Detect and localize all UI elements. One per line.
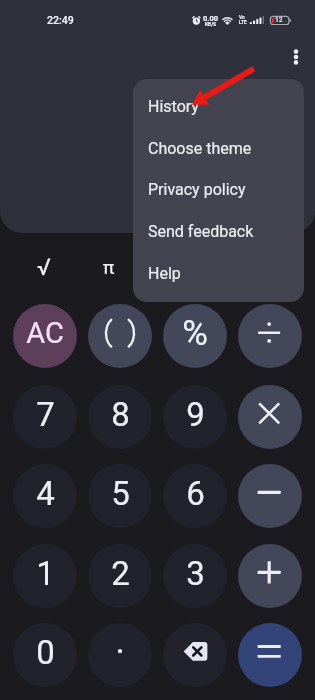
button[interactable]: 7 (13, 385, 77, 449)
staticText: Help (148, 264, 181, 283)
staticText: LTE (239, 20, 247, 26)
staticText: 6 (186, 474, 205, 513)
button[interactable]: Backspace (163, 623, 227, 687)
button[interactable]: Help (133, 252, 304, 294)
staticText: AC (26, 316, 64, 350)
button[interactable]: Pi (87, 245, 131, 289)
staticText: √ (37, 254, 51, 281)
staticText: Privacy policy (148, 180, 246, 199)
staticText: 3 (186, 554, 205, 593)
staticText: % (182, 313, 208, 354)
staticText: 7 (36, 395, 55, 434)
button[interactable]: 6 (163, 464, 227, 528)
staticText: 8 (111, 395, 130, 434)
button[interactable]: 8 (88, 385, 152, 449)
button[interactable]: 5 (88, 464, 152, 528)
button[interactable]: Equals (238, 623, 302, 687)
button[interactable]: Minus (238, 464, 302, 528)
staticText: Send feedback (148, 222, 254, 241)
button[interactable]: Privacy policy (133, 168, 304, 210)
button[interactable]: More options (284, 45, 308, 69)
staticText: 0.00 (203, 14, 219, 23)
staticText: 1 (36, 554, 55, 593)
button[interactable]: % (163, 304, 227, 368)
staticText: π (103, 256, 115, 278)
staticText: 2 (111, 554, 130, 593)
button[interactable]: Square root (22, 245, 66, 289)
staticText: 12 (275, 16, 283, 24)
staticText: Vo (239, 15, 245, 21)
button[interactable]: 0 (13, 623, 77, 687)
staticText: KB/S (205, 21, 217, 27)
button[interactable]: Divide (238, 304, 302, 368)
button[interactable]: Parentheses (88, 304, 152, 368)
button[interactable]: Send feedback (133, 210, 304, 252)
button[interactable]: 2 (88, 544, 152, 608)
staticText: History (148, 97, 199, 116)
staticText: 22:49 (47, 14, 74, 26)
button[interactable]: 3 (163, 544, 227, 608)
staticText: 9 (186, 395, 205, 434)
button[interactable]: Plus (238, 544, 302, 608)
button[interactable]: 4 (13, 464, 77, 528)
staticText: Choose theme (148, 139, 252, 158)
button[interactable]: Choose theme (133, 127, 304, 169)
button[interactable]: Decimal point (88, 623, 152, 687)
button[interactable]: 9 (163, 385, 227, 449)
button[interactable]: AC (13, 304, 77, 368)
staticText: 4 (36, 474, 55, 513)
button[interactable]: 1 (13, 544, 77, 608)
staticText: 5 (111, 474, 130, 513)
staticText: 0 (36, 633, 55, 672)
button[interactable]: History (133, 85, 304, 127)
button[interactable]: Multiply (238, 385, 302, 449)
